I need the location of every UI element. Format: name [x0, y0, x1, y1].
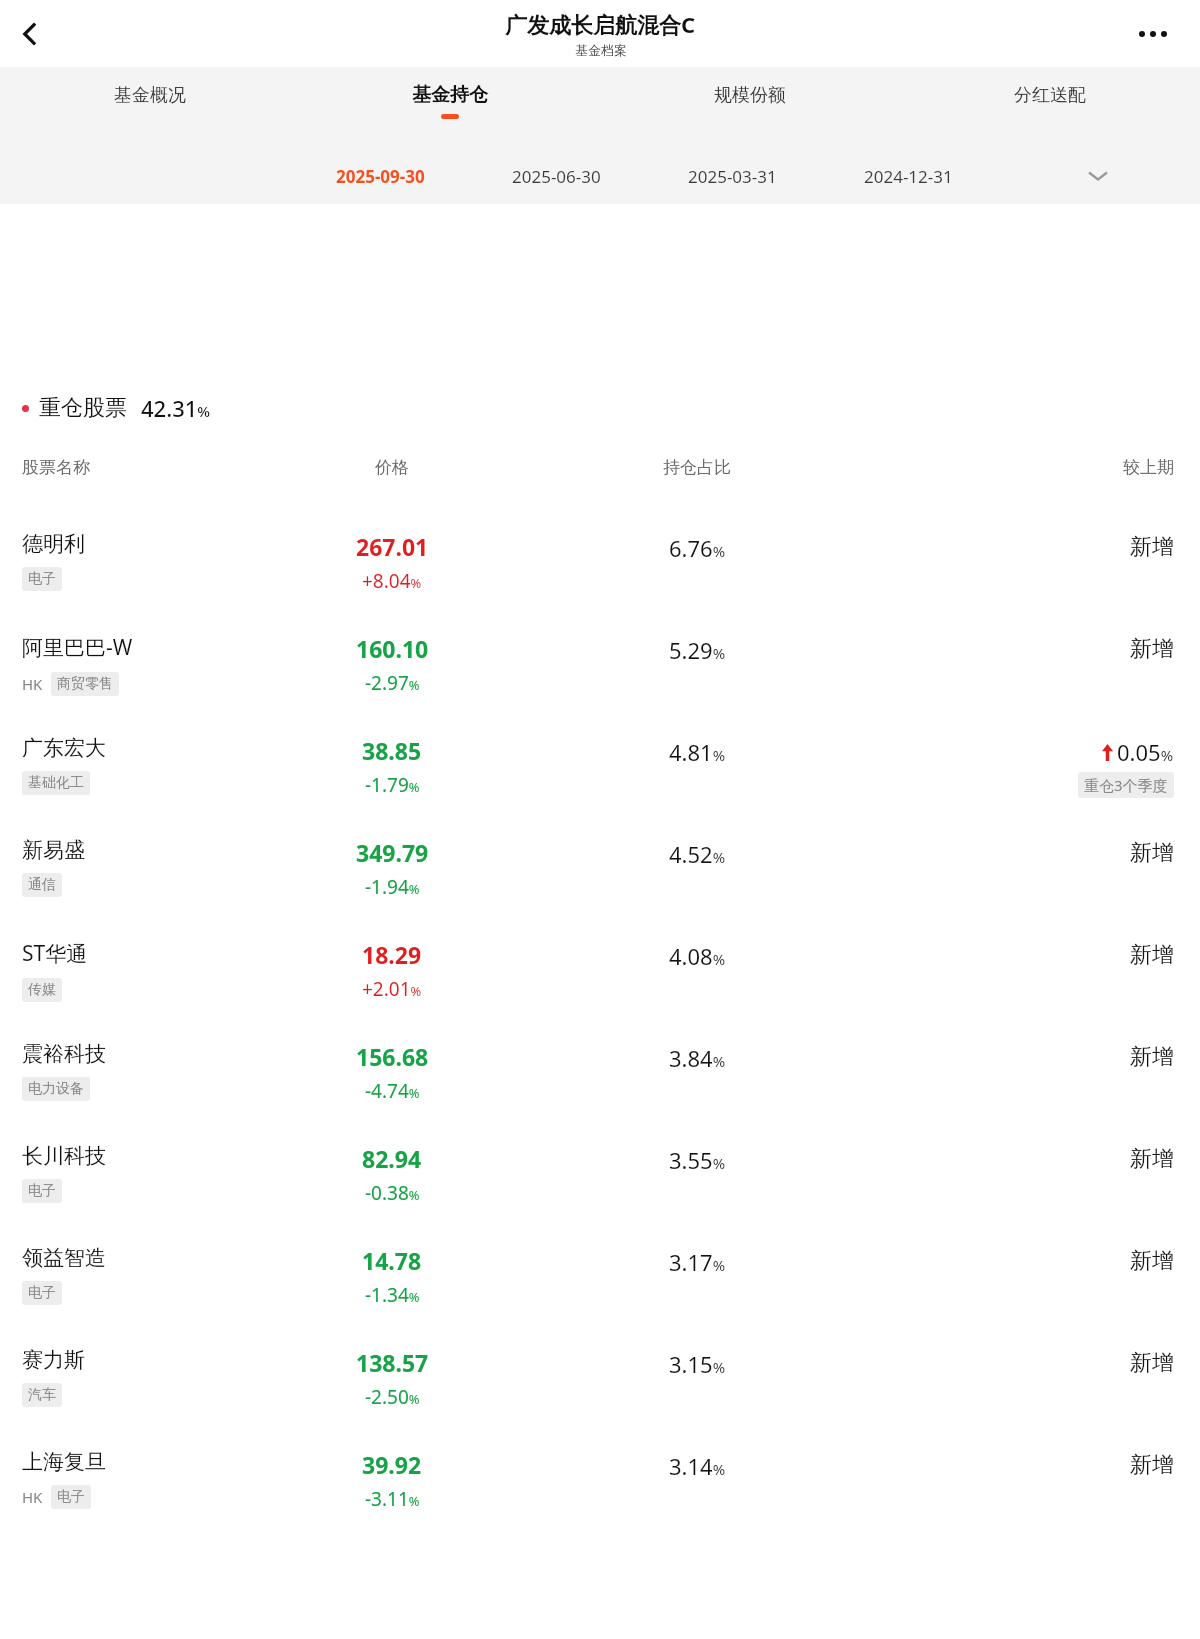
staticText: 广发成长启航混合C: [505, 9, 696, 39]
button[interactable]: 领益智造: [0, 1231, 1200, 1333]
staticText: -2.97%: [365, 670, 420, 696]
staticText: 3.84%: [669, 1043, 726, 1073]
staticText: 赛力斯: [22, 1347, 85, 1373]
staticText: 2025-09-30: [336, 165, 425, 188]
staticText: 规模份额: [714, 84, 786, 107]
staticText: 较上期: [832, 457, 1174, 478]
staticText: 电子: [28, 570, 56, 588]
button[interactable]: ST华通: [0, 925, 1200, 1027]
staticText: 2024-12-31: [864, 165, 953, 188]
staticText: -1.34%: [365, 1282, 420, 1308]
button[interactable]: 分红送配: [900, 67, 1200, 135]
staticText: -0.38%: [365, 1180, 420, 1206]
staticText: 重仓股票: [39, 394, 127, 422]
staticText: 新增: [1130, 1145, 1174, 1173]
staticText: 6.76%: [669, 533, 726, 563]
staticText: -2.50%: [365, 1384, 420, 1410]
button[interactable]: 赛力斯: [0, 1333, 1200, 1435]
button[interactable]: Expand dates: [996, 153, 1200, 199]
staticText: 广东宏大: [22, 735, 106, 761]
staticText: +8.04%: [362, 568, 422, 594]
staticText: 传媒: [28, 981, 56, 999]
button[interactable]: 震裕科技: [0, 1027, 1200, 1129]
staticText: 阿里巴巴-W: [22, 633, 133, 662]
staticText: 160.10: [356, 633, 429, 664]
staticText: 基金持仓: [412, 83, 488, 107]
staticText: 0.05%: [1117, 737, 1174, 767]
button[interactable]: 广东宏大: [0, 721, 1200, 823]
staticText: 新增: [1130, 1451, 1174, 1479]
button[interactable]: 阿里巴巴-W: [0, 619, 1200, 721]
staticText: ST华通: [22, 939, 88, 968]
staticText: 电子: [57, 1488, 85, 1506]
staticText: 38.85: [362, 735, 422, 766]
staticText: 电力设备: [28, 1080, 84, 1098]
staticText: 新增: [1130, 1349, 1174, 1377]
staticText: 基础化工: [28, 774, 84, 792]
staticText: 156.68: [356, 1041, 429, 1072]
staticText: 349.79: [356, 837, 429, 868]
button[interactable]: 基金概况: [0, 67, 300, 135]
staticText: 分红送配: [1014, 84, 1086, 107]
staticText: 18.29: [362, 939, 422, 970]
staticText: 138.57: [356, 1347, 429, 1378]
staticText: 4.52%: [669, 839, 726, 869]
staticText: -1.79%: [365, 772, 420, 798]
staticText: 价格: [222, 457, 562, 478]
staticText: 领益智造: [22, 1245, 106, 1271]
button[interactable]: 2025-03-31: [644, 153, 820, 199]
button[interactable]: 长川科技: [0, 1129, 1200, 1231]
staticText: HK: [22, 674, 43, 694]
staticText: 42.31%: [141, 393, 211, 423]
staticText: 电子: [28, 1182, 56, 1200]
staticText: 新增: [1130, 635, 1174, 663]
staticText: 持仓占比: [562, 457, 832, 478]
staticText: 14.78: [362, 1245, 422, 1276]
staticText: 新增: [1130, 1043, 1174, 1071]
staticText: 3.55%: [669, 1145, 726, 1175]
staticText: 4.81%: [669, 737, 726, 767]
button[interactable]: 2024-12-31: [820, 153, 996, 199]
staticText: 39.92: [362, 1449, 422, 1480]
staticText: 4.08%: [669, 941, 726, 971]
staticText: 新增: [1130, 839, 1174, 867]
staticText: -3.11%: [365, 1486, 420, 1512]
staticText: 上海复旦: [22, 1449, 106, 1475]
staticText: 267.01: [356, 531, 429, 562]
button[interactable]: 德明利: [0, 517, 1200, 619]
staticText: 通信: [28, 876, 56, 894]
button[interactable]: 上海复旦: [0, 1435, 1200, 1537]
staticText: 商贸零售: [57, 675, 113, 693]
staticText: 德明利: [22, 531, 85, 557]
staticText: 电子: [28, 1284, 56, 1302]
staticText: -1.94%: [365, 874, 420, 900]
button[interactable]: 2025-09-30: [292, 153, 468, 199]
staticText: 新增: [1130, 1247, 1174, 1275]
staticText: 重仓3个季度: [1084, 775, 1168, 795]
staticText: -4.74%: [365, 1078, 420, 1104]
staticText: 3.14%: [669, 1451, 726, 1481]
staticText: 长川科技: [22, 1143, 106, 1169]
staticText: 基金档案: [575, 42, 627, 58]
staticText: 2025-06-30: [512, 165, 601, 188]
staticText: 3.15%: [669, 1349, 726, 1379]
staticText: 基金概况: [114, 84, 186, 107]
staticText: 3.17%: [669, 1247, 726, 1277]
button[interactable]: More options: [1128, 9, 1178, 59]
button[interactable]: 2025-06-30: [468, 153, 644, 199]
staticText: +2.01%: [362, 976, 422, 1002]
staticText: 震裕科技: [22, 1041, 106, 1067]
staticText: HK: [22, 1487, 43, 1507]
button[interactable]: 基金持仓: [300, 67, 600, 135]
staticText: 2025-03-31: [688, 165, 777, 188]
staticText: 新易盛: [22, 837, 85, 863]
staticText: 汽车: [28, 1386, 56, 1404]
staticText: 5.29%: [669, 635, 726, 665]
button[interactable]: 新易盛: [0, 823, 1200, 925]
button[interactable]: Back: [0, 4, 60, 64]
staticText: 股票名称: [22, 457, 222, 478]
staticText: 新增: [1130, 941, 1174, 969]
staticText: 新增: [1130, 533, 1174, 561]
button[interactable]: 规模份额: [600, 67, 900, 135]
staticText: 82.94: [362, 1143, 422, 1174]
